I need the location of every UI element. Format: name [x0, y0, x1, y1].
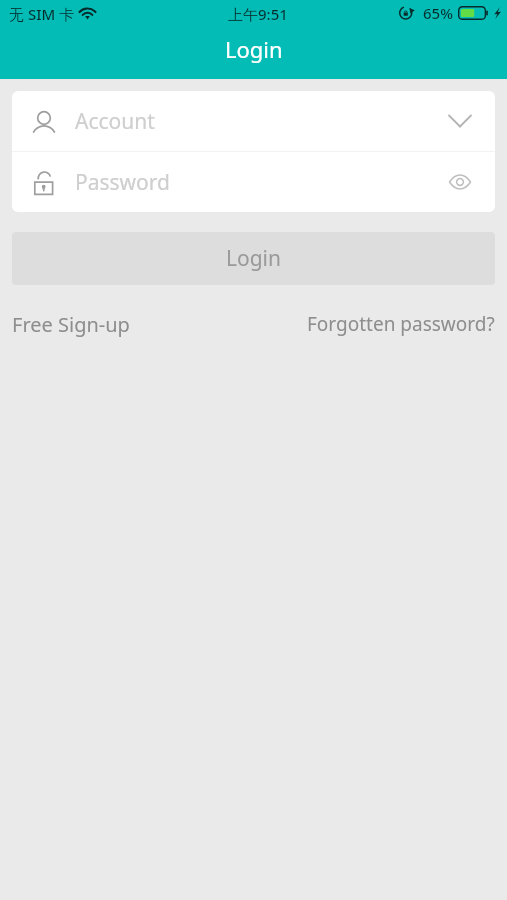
- staticText: Account: [75, 107, 155, 136]
- button[interactable]: Password: [12, 152, 495, 212]
- staticText: Login: [225, 34, 283, 64]
- staticText: Password: [75, 168, 170, 197]
- button[interactable]: Login: [12, 232, 495, 285]
- button[interactable]: Show password: [438, 160, 482, 204]
- button[interactable]: Forgotten password?: [307, 311, 495, 337]
- button[interactable]: Show saved accounts: [438, 99, 482, 143]
- staticText: 无 SIM 卡: [9, 4, 75, 24]
- staticText: 上午9:51: [228, 4, 288, 24]
- button[interactable]: Account: [12, 91, 495, 151]
- staticText: 65%: [423, 3, 453, 23]
- button[interactable]: Free Sign-up: [12, 311, 130, 338]
- staticText: Login: [226, 244, 282, 273]
